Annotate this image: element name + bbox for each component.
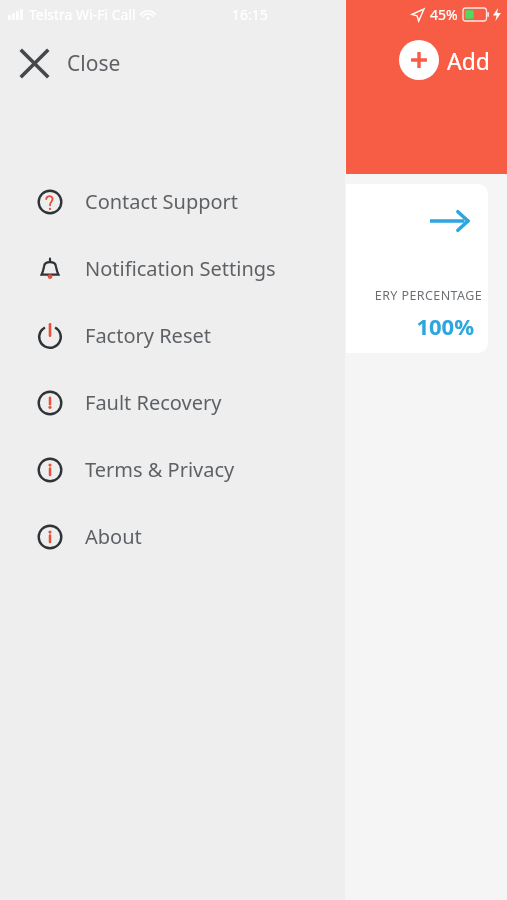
staticText: 100% xyxy=(346,311,474,341)
button[interactable]: Add xyxy=(397,38,492,82)
button[interactable]: Factory Reset xyxy=(0,302,345,369)
button[interactable]: ERY PERCENTAGE xyxy=(346,184,488,353)
staticText: Contact Support xyxy=(85,188,239,215)
staticText: Terms & Privacy xyxy=(85,456,235,483)
button[interactable]: Fault Recovery xyxy=(0,369,345,436)
button[interactable]: Notification Settings xyxy=(0,235,345,302)
button[interactable]: Close xyxy=(0,30,345,96)
staticText: ERY PERCENTAGE xyxy=(346,287,482,304)
staticText: Telstra Wi-Fi Call xyxy=(29,5,136,24)
staticText: Notification Settings xyxy=(85,255,276,282)
staticText: Close xyxy=(67,49,121,78)
staticText: Fault Recovery xyxy=(85,389,222,416)
staticText: About xyxy=(85,523,142,550)
staticText: Add xyxy=(447,45,490,76)
staticText: 45% xyxy=(430,5,458,24)
staticText: Factory Reset xyxy=(85,322,211,349)
button[interactable]: Terms & Privacy xyxy=(0,436,345,503)
button[interactable]: Contact Support xyxy=(0,168,345,235)
button[interactable]: About xyxy=(0,503,345,570)
staticText: 16:15 xyxy=(232,5,268,24)
